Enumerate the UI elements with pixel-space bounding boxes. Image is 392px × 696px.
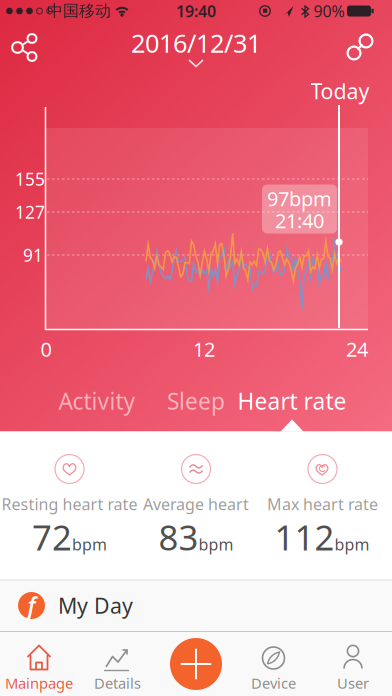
- button[interactable]: [7, 22, 51, 72]
- staticText: Heart rate: [237, 386, 346, 416]
- staticText: 中国移动: [47, 1, 111, 21]
- staticText: 112: [274, 514, 334, 560]
- staticText: 2016/12/31: [131, 26, 261, 60]
- button[interactable]: [170, 638, 222, 690]
- staticText: 97bpm: [267, 185, 332, 212]
- staticText: 91: [23, 243, 43, 266]
- button[interactable]: User: [314, 632, 392, 696]
- staticText: 21:40: [275, 207, 324, 234]
- staticText: 12: [193, 336, 215, 362]
- staticText: 155: [15, 167, 45, 190]
- staticText: Sleep: [167, 386, 225, 416]
- staticText: bpm: [198, 534, 233, 555]
- staticText: 90%: [313, 0, 344, 22]
- button[interactable]: Mainpage: [0, 632, 78, 696]
- staticText: 83: [158, 514, 198, 560]
- staticText: Resting heart rate: [1, 493, 137, 515]
- staticText: Device: [251, 673, 296, 693]
- staticText: Max heart rate: [267, 493, 378, 515]
- staticText: My Day: [58, 591, 133, 620]
- staticText: 0: [40, 336, 51, 362]
- button[interactable]: Heart rate: [237, 381, 347, 421]
- staticText: 127: [15, 200, 45, 223]
- staticText: f: [27, 590, 35, 620]
- staticText: Mainpage: [5, 673, 73, 693]
- button[interactable]: Details: [78, 632, 156, 696]
- staticText: Average heart: [143, 493, 249, 515]
- button[interactable]: [338, 25, 382, 69]
- button[interactable]: Activity: [42, 381, 152, 421]
- staticText: bpm: [72, 534, 107, 555]
- button[interactable]: f: [0, 580, 392, 630]
- staticText: 19:40: [176, 0, 216, 22]
- staticText: Today: [310, 77, 369, 105]
- button[interactable]: Sleep: [146, 381, 246, 421]
- staticText: User: [337, 673, 369, 693]
- staticText: 24: [346, 336, 368, 362]
- button[interactable]: Device: [234, 632, 312, 696]
- staticText: 72: [32, 514, 72, 560]
- staticText: Details: [94, 673, 141, 693]
- button[interactable]: 2016/12/31: [126, 22, 266, 72]
- staticText: Activity: [58, 386, 135, 416]
- staticText: bpm: [334, 534, 369, 555]
